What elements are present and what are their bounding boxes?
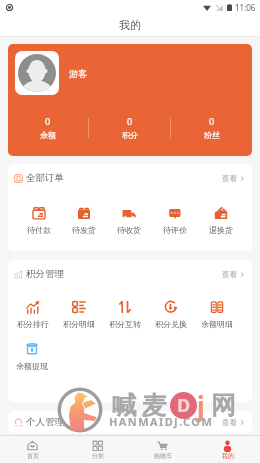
button[interactable]: 分类 (65, 436, 130, 463)
button[interactable]: 0 (8, 115, 88, 140)
button[interactable]: 待发货 (61, 206, 106, 235)
button[interactable]: 积分排行 (9, 300, 56, 329)
button[interactable]: 待评价 (152, 206, 198, 235)
staticText: 分类 (92, 452, 104, 460)
button[interactable]: 积分兑换 (148, 300, 194, 329)
button[interactable]: 我的 (195, 436, 260, 463)
staticText: 全部订单 (26, 172, 64, 184)
button[interactable]: 待收货 (106, 206, 152, 235)
button[interactable]: 余额提现 (9, 342, 55, 371)
button[interactable]: 积分管理 (8, 260, 252, 288)
staticText: 积分明细 (63, 319, 95, 329)
staticText: 个人管理 (26, 416, 64, 428)
staticText: 退换货 (209, 225, 233, 235)
button[interactable]: 待付款 (16, 206, 61, 235)
button[interactable]: 购物车 (130, 436, 195, 463)
staticText: 11:06 (235, 2, 256, 13)
button[interactable]: 退换货 (198, 206, 244, 235)
staticText: j (197, 388, 205, 423)
staticText: 喊麦 (109, 390, 169, 421)
button[interactable]: 首页 (0, 436, 65, 463)
staticText: 我的 (119, 18, 141, 32)
staticText: 待评价 (163, 225, 187, 235)
staticText: 0 (209, 115, 215, 127)
staticText: 积分兑换 (155, 319, 187, 329)
staticText: 余额明细 (201, 319, 233, 329)
staticText: 购物车 (154, 452, 172, 460)
staticText: 待收货 (117, 225, 141, 235)
staticText: 我的 (222, 452, 234, 460)
button[interactable]: 全部订单 (8, 164, 252, 192)
button[interactable]: 积分明细 (56, 300, 102, 329)
staticText: 积分互转 (109, 319, 141, 329)
staticText: 首页 (27, 452, 39, 460)
staticText: 查看 (222, 270, 237, 279)
staticText: HANMAIDJ.COM (109, 414, 214, 429)
staticText: 待发货 (72, 225, 96, 235)
button[interactable]: 游客 (15, 51, 87, 95)
staticText: 查看 (222, 174, 237, 183)
staticText: 待付款 (27, 225, 51, 235)
button[interactable]: 个人管理 (8, 411, 252, 433)
staticText: 游客 (69, 68, 87, 79)
button[interactable]: 0 (89, 115, 170, 140)
button[interactable]: 积分互转 (102, 300, 148, 329)
staticText: 余额 (40, 130, 56, 140)
staticText: 网 (211, 390, 236, 421)
button[interactable]: 0 (171, 115, 252, 140)
staticText: 粉丝 (204, 130, 220, 140)
staticText: 积分排行 (17, 319, 49, 329)
staticText: D (177, 393, 191, 418)
staticText: 积分 (122, 130, 138, 140)
staticText: 余额提现 (16, 361, 48, 371)
staticText: 0 (45, 115, 51, 127)
staticText: 0 (127, 115, 133, 127)
staticText: 积分管理 (26, 268, 64, 280)
staticText: 查看 (222, 418, 237, 427)
button[interactable]: 余额明细 (194, 300, 240, 329)
